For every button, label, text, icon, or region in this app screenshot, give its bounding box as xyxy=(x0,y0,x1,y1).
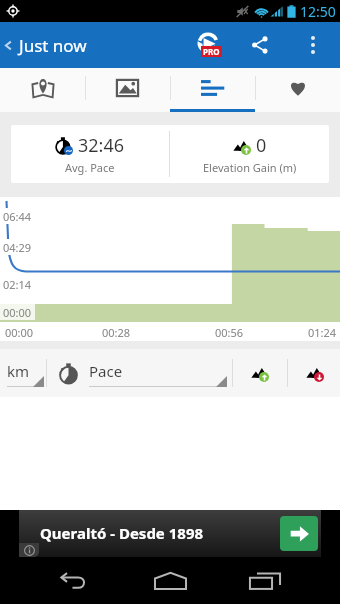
staticText: Avg. Pace xyxy=(65,160,115,175)
button[interactable]: Pace metric xyxy=(52,349,84,397)
staticText: km xyxy=(7,361,30,381)
staticText: Elevation Gain (m) xyxy=(203,160,297,175)
staticText: 0 xyxy=(256,133,267,158)
button[interactable]: Recent apps xyxy=(242,557,288,604)
button[interactable]: Back xyxy=(50,557,96,604)
staticText: PRO xyxy=(203,46,220,57)
staticText: 32:46 xyxy=(78,133,125,158)
staticText: Just now xyxy=(19,34,87,57)
button[interactable]: Pace xyxy=(88,349,228,397)
button[interactable]: Just now xyxy=(0,22,95,68)
button[interactable]: Stats xyxy=(170,68,255,112)
staticText: 06:44 xyxy=(3,209,32,224)
staticText: 00:56 xyxy=(215,325,244,340)
button[interactable] xyxy=(19,510,321,557)
button[interactable]: Ad info xyxy=(19,543,39,557)
button[interactable]: Favorites xyxy=(255,68,340,112)
staticText: 12:50 xyxy=(300,2,336,21)
button[interactable]: Elevation gain xyxy=(236,349,284,397)
button[interactable]: Pro xyxy=(186,22,230,68)
button[interactable]: Photos xyxy=(85,68,170,112)
staticText: 00:28 xyxy=(102,325,131,340)
staticText: 04:29 xyxy=(3,240,32,255)
button[interactable]: Share xyxy=(238,22,282,68)
staticText: 01:24 xyxy=(308,325,337,340)
staticText: 02:14 xyxy=(3,277,32,292)
staticText: 00:00 xyxy=(5,325,34,340)
button[interactable]: 0 xyxy=(170,125,329,183)
staticText: Queraltó - Desde 1898 xyxy=(40,523,204,543)
staticText: 00:00 xyxy=(3,305,32,320)
button[interactable]: 32:46 xyxy=(11,125,169,183)
button[interactable]: km xyxy=(5,349,46,397)
button[interactable]: Elevation loss xyxy=(291,349,339,397)
button[interactable]: Open ad xyxy=(280,516,318,551)
button[interactable]: More options xyxy=(291,22,335,68)
staticText: Pace xyxy=(89,361,123,381)
button[interactable]: Home xyxy=(147,557,193,604)
button[interactable]: Map xyxy=(0,68,85,112)
